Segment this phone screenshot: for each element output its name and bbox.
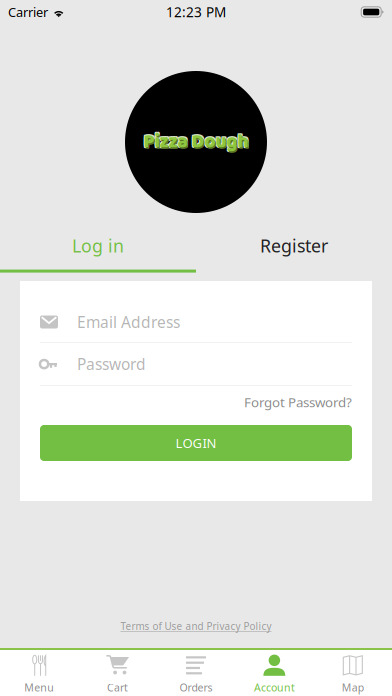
staticText: Email Address [77, 311, 180, 333]
staticText: Pizza Dough [145, 128, 250, 158]
staticText: Pizza Dough [143, 127, 248, 157]
staticText: Orders [179, 680, 212, 695]
staticText: Pizza Dough [142, 128, 247, 158]
staticText: Password [77, 353, 146, 375]
staticText: Pizza Dough [142, 126, 247, 156]
staticText: Pizza Dough [145, 126, 250, 156]
staticText: Pizza Dough [144, 128, 249, 158]
button[interactable]: Account [235, 650, 314, 696]
button[interactable]: Register [196, 230, 392, 271]
button[interactable]: Cart [78, 650, 157, 696]
button[interactable]: Forgot Password? [244, 389, 352, 415]
button[interactable]: Menu [0, 650, 78, 696]
staticText: Forgot Password? [244, 393, 352, 411]
staticText: Terms of Use and Privacy Policy [120, 620, 271, 633]
button[interactable]: Orders [157, 650, 235, 696]
button[interactable]: Log in [0, 230, 196, 271]
button[interactable]: Map [314, 650, 392, 696]
staticText: Log in [72, 233, 124, 258]
staticText: Menu [24, 680, 54, 695]
staticText: Register [260, 233, 328, 258]
staticText: Carrier [8, 3, 48, 21]
button[interactable]: Terms of Use and Privacy Policy [120, 620, 271, 633]
staticText: 12:23 PM [166, 3, 226, 21]
button[interactable]: LOGIN [40, 425, 352, 461]
staticText: Account [254, 680, 295, 695]
staticText: Map [342, 680, 364, 695]
staticText: LOGIN [175, 434, 216, 452]
staticText: Cart [107, 680, 128, 695]
